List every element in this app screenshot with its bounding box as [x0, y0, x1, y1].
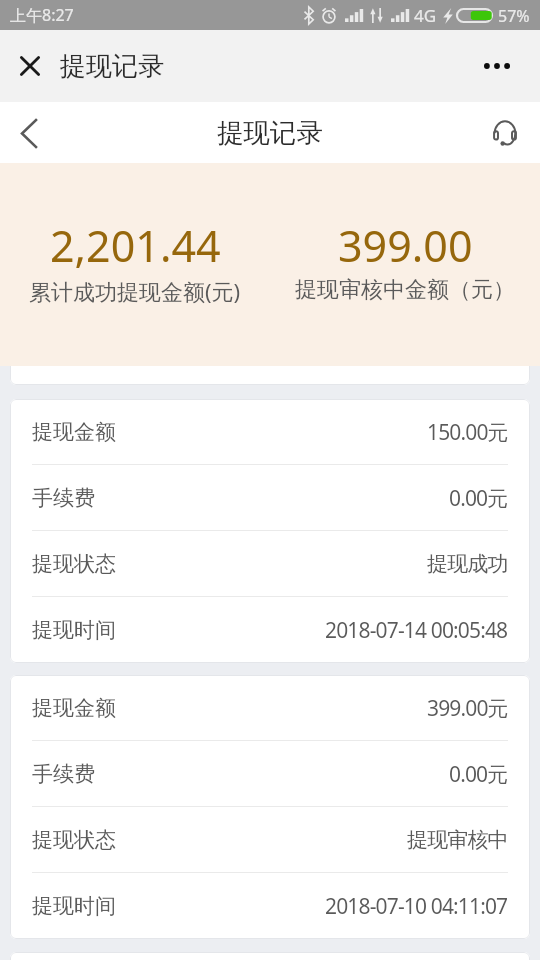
- staticText: 提现审核中金额（元）: [295, 276, 515, 304]
- staticText: 0.00元: [449, 760, 508, 789]
- staticText: 提现时间: [32, 893, 116, 919]
- staticText: 提现审核中: [407, 827, 508, 853]
- button[interactable]: Back: [4, 108, 54, 158]
- staticText: 2018-07-14 00:05:48: [325, 616, 508, 645]
- staticText: 0.00元: [449, 484, 508, 513]
- staticText: 57%: [498, 5, 530, 27]
- staticText: 399.00: [338, 216, 473, 275]
- staticText: 2018-07-10 04:11:07: [325, 892, 508, 921]
- staticText: 提现记录: [60, 50, 164, 83]
- button[interactable]: 提现金额: [10, 675, 530, 939]
- button[interactable]: Close: [7, 43, 53, 89]
- staticText: 手续费: [32, 761, 95, 787]
- button[interactable]: [10, 952, 530, 960]
- staticText: 提现记录: [217, 116, 323, 149]
- button[interactable]: 提现金额: [10, 399, 530, 663]
- staticText: 提现状态: [32, 551, 116, 577]
- button[interactable]: [10, 122, 530, 385]
- staticText: 2,201.44: [50, 216, 221, 275]
- staticText: 提现金额: [32, 695, 116, 721]
- staticText: 提现时间: [32, 617, 116, 643]
- staticText: 4G: [414, 4, 437, 27]
- button[interactable]: Customer service: [485, 113, 525, 153]
- staticText: 手续费: [32, 485, 95, 511]
- staticText: 提现金额: [32, 419, 116, 445]
- staticText: 上午8:27: [10, 4, 74, 26]
- staticText: 累计成功提现金额(元): [29, 276, 241, 306]
- staticText: 150.00元: [427, 418, 508, 447]
- button[interactable]: More options: [474, 43, 520, 89]
- staticText: 提现状态: [32, 827, 116, 853]
- staticText: 399.00元: [427, 694, 508, 723]
- staticText: 提现成功: [427, 551, 508, 577]
